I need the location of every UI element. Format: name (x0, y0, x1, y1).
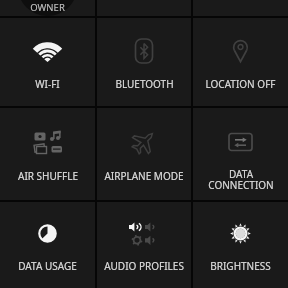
staticText: DATA CONNECTION (208, 167, 274, 192)
button[interactable]: LOCATION OFF (193, 18, 288, 106)
staticText: LOCATION OFF (205, 77, 276, 91)
staticText: BLUETOOTH (115, 77, 174, 91)
staticText: WI-FI (35, 77, 60, 91)
button[interactable]: OWNER (0, 0, 95, 16)
button[interactable]: AIRPLANE MODE (97, 108, 191, 200)
button[interactable]: BLUETOOTH (97, 18, 191, 106)
staticText: BRIGHTNESS (210, 259, 271, 273)
staticText: AIR SHUFFLE (18, 169, 78, 183)
staticText: AUDIO PROFILES (104, 259, 184, 273)
button[interactable]: AIR SHUFFLE (0, 108, 95, 200)
button[interactable]: AUDIO PROFILES (97, 202, 191, 288)
button[interactable]: DATA USAGE (0, 202, 95, 288)
button[interactable]: BRIGHTNESS (193, 202, 288, 288)
staticText: AIRPLANE MODE (104, 169, 184, 183)
button[interactable]: DATA CONNECTION (193, 108, 288, 200)
staticText: OWNER (30, 1, 65, 14)
staticText: DATA USAGE (18, 259, 77, 273)
button[interactable]: WI-FI (0, 18, 95, 106)
